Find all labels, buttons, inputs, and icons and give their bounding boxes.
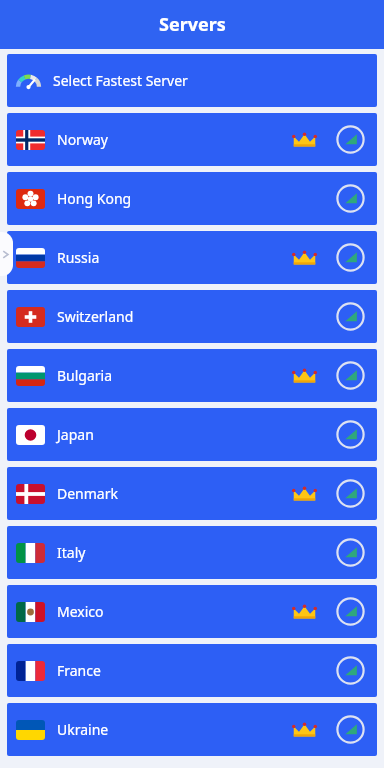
staticText: Select Fastest Server xyxy=(53,71,188,90)
other: Signal strength xyxy=(336,184,365,213)
staticText: Russia xyxy=(57,248,100,267)
staticText: Bulgaria xyxy=(57,366,113,385)
staticText: Japan xyxy=(57,425,94,444)
staticText: Mexico xyxy=(57,602,104,621)
other: Signal strength xyxy=(336,656,365,685)
other: Premium server xyxy=(292,603,317,621)
button[interactable]: Japan xyxy=(7,408,377,461)
staticText: Denmark xyxy=(57,484,118,503)
button[interactable]: Hong Kong xyxy=(7,172,377,225)
staticText: Servers xyxy=(159,12,226,37)
button[interactable]: Norway xyxy=(7,113,377,166)
other: Signal strength xyxy=(336,243,365,272)
other: Premium server xyxy=(292,485,317,503)
other: Premium server xyxy=(292,249,317,267)
other: Signal strength xyxy=(336,538,365,567)
staticText: Hong Kong xyxy=(57,189,132,208)
other: Signal strength xyxy=(336,302,365,331)
button[interactable]: Italy xyxy=(7,526,377,579)
staticText: France xyxy=(57,661,101,680)
button[interactable]: Bulgaria xyxy=(7,349,377,402)
other: Signal strength xyxy=(336,479,365,508)
button[interactable]: Ukraine xyxy=(7,703,377,756)
staticText: Italy xyxy=(57,543,86,562)
button[interactable]: France xyxy=(7,644,377,697)
button[interactable]: Russia xyxy=(7,231,377,284)
other: Signal strength xyxy=(336,715,365,744)
other: Signal strength xyxy=(336,597,365,626)
other: Premium server xyxy=(292,367,317,385)
staticText: Ukraine xyxy=(57,720,109,739)
button[interactable]: Open menu xyxy=(0,232,13,276)
other: Signal strength xyxy=(336,361,365,390)
staticText: Switzerland xyxy=(57,307,134,326)
other: Premium server xyxy=(292,131,317,149)
other: Signal strength xyxy=(336,420,365,449)
button[interactable]: Select Fastest Server xyxy=(7,54,377,107)
staticText: Norway xyxy=(57,130,108,149)
other: Signal strength xyxy=(336,125,365,154)
other: Premium server xyxy=(292,721,317,739)
button[interactable]: Denmark xyxy=(7,467,377,520)
button[interactable]: Switzerland xyxy=(7,290,377,343)
button[interactable]: Mexico xyxy=(7,585,377,638)
